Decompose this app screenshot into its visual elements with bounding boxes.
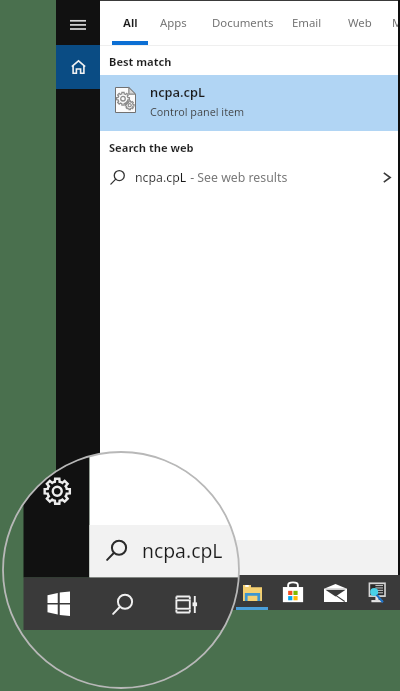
staticText: Search the web: [109, 140, 194, 155]
button[interactable]: File Explorer: [233, 575, 271, 610]
button[interactable]: Search Computer: [358, 575, 396, 610]
staticText: Web: [348, 15, 372, 31]
button[interactable]: Start: [56, 575, 102, 610]
staticText: Control panel item: [150, 104, 245, 119]
staticText: ncpa.cpL: [142, 537, 223, 564]
button[interactable]: Task View: [141, 575, 187, 610]
button[interactable]: ncpa.cpL: [100, 540, 398, 575]
button[interactable]: Microsoft Store: [274, 575, 312, 610]
staticText: ncpa.cpL: [135, 548, 189, 566]
staticText: All: [123, 15, 138, 31]
button[interactable]: ncpa.cpL: [89, 525, 400, 577]
button[interactable]: M: [381, 1, 400, 45]
button[interactable]: Start: [23, 577, 92, 630]
button[interactable]: ncpa.cpL: [89, 0, 400, 7]
staticText: - See web results: [187, 169, 288, 186]
button[interactable]: Menu: [56, 4, 100, 45]
button[interactable]: Documents: [201, 1, 285, 45]
button[interactable]: Apps: [149, 1, 198, 45]
button[interactable]: Email: [281, 1, 333, 45]
staticText: Apps: [160, 15, 187, 31]
button[interactable]: Task View: [151, 577, 220, 630]
button[interactable]: Home: [56, 45, 100, 89]
button[interactable]: File Explorer: [289, 577, 346, 630]
button[interactable]: Web: [337, 1, 383, 45]
staticText: ncpa.cpL: [135, 169, 187, 186]
staticText: Best match: [109, 54, 172, 69]
button[interactable]: Microsoft Store: [350, 577, 400, 630]
button[interactable]: Settings: [23, 466, 89, 514]
button[interactable]: All: [112, 1, 149, 45]
button[interactable]: Search: [99, 575, 145, 610]
button[interactable]: Mail: [316, 575, 354, 610]
staticText: Documents: [212, 15, 274, 31]
staticText: M: [392, 15, 400, 31]
button[interactable]: Settings: [56, 501, 100, 533]
staticText: Email: [292, 15, 322, 31]
button[interactable]: ncpa.cpL: [100, 75, 398, 131]
button[interactable]: Search: [88, 577, 157, 630]
staticText: ncpa.cpL: [150, 83, 206, 100]
button[interactable]: ncpa.cpL: [100, 161, 398, 195]
